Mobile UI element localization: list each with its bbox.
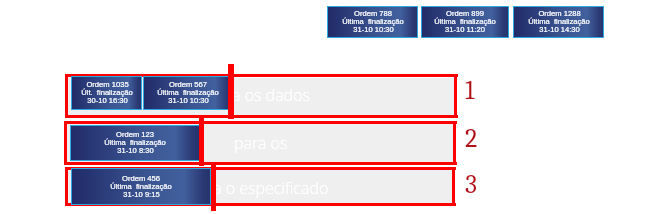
staticText: Ordem 456 — [122, 174, 160, 182]
staticText: para os — [234, 132, 288, 154]
staticText: 2 — [465, 124, 478, 154]
staticText: Última finalização — [157, 88, 219, 96]
button[interactable]: Ordem 1288 — [513, 6, 604, 38]
staticText: Última finalização — [528, 17, 590, 25]
staticText: 3 — [465, 170, 477, 200]
staticText: 31-10 14:30 — [539, 25, 580, 33]
staticText: Últ. finalização — [81, 88, 133, 96]
staticText: Última finalização — [110, 182, 172, 190]
button[interactable]: Ordem 788 — [327, 6, 418, 38]
staticText: Ordem 123 — [116, 130, 154, 138]
staticText: a o especificado — [213, 177, 329, 199]
button[interactable]: Ordem 1035 — [71, 76, 142, 110]
staticText: Ordem 1035 — [86, 80, 129, 88]
button[interactable]: Ordem 123 — [70, 125, 200, 161]
staticText: Última finalização — [104, 138, 166, 146]
staticText: 31-10 10:30 — [353, 25, 394, 33]
staticText: 31-10 11:20 — [445, 25, 485, 33]
staticText: 31-10 10:30 — [168, 96, 209, 104]
staticText: Ordem 788 — [354, 9, 392, 17]
staticText: Ordem 899 — [446, 9, 484, 17]
button[interactable]: Ordem 567 — [143, 76, 232, 110]
button[interactable]: Ordem 899 — [421, 6, 509, 38]
staticText: Ordem 567 — [169, 80, 207, 88]
button[interactable]: Ordem 456 — [71, 168, 211, 205]
staticText: Ordem 1288 — [538, 9, 581, 17]
staticText: a os dados — [232, 84, 310, 106]
staticText: 1 — [465, 76, 475, 106]
staticText: Última finalização — [342, 17, 404, 25]
staticText: 31-10 9:15 — [123, 190, 160, 198]
staticText: 31-10 8:30 — [117, 146, 154, 154]
staticText: Última finalização — [434, 17, 496, 25]
staticText: 30-10 16:30 — [87, 96, 128, 104]
